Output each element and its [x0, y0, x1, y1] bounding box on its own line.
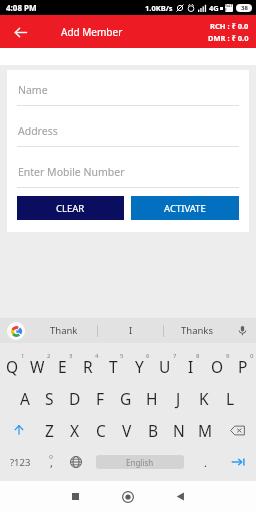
button[interactable]: I	[178, 350, 204, 382]
staticText: Add Member	[61, 25, 123, 39]
staticText: M	[198, 420, 213, 441]
staticText: N	[173, 420, 185, 441]
button[interactable]: F	[87, 382, 113, 414]
staticText: DMR : ₹ 0.0	[208, 33, 249, 43]
button[interactable]: V	[114, 414, 140, 446]
button[interactable]: N	[166, 414, 192, 446]
button[interactable]: Y	[126, 350, 152, 382]
staticText: 5	[120, 352, 124, 360]
staticText: H	[146, 388, 158, 409]
staticText: Enter Mobile Number	[18, 165, 125, 179]
button[interactable]: Address	[17, 124, 239, 147]
staticText: 38	[241, 4, 248, 12]
staticText: English	[126, 457, 154, 468]
button[interactable]: U	[152, 350, 178, 382]
staticText: Y	[135, 356, 144, 377]
staticText: 1	[21, 352, 25, 360]
button[interactable]: Shift	[0, 414, 37, 446]
staticText: K	[199, 388, 209, 409]
staticText: A	[20, 388, 30, 409]
staticText: VoLTE	[225, 4, 233, 12]
staticText: 8	[196, 352, 200, 360]
button[interactable]: E	[50, 350, 75, 382]
staticText: .	[204, 455, 207, 470]
button[interactable]: Back	[9, 21, 31, 43]
staticText: Address	[18, 124, 58, 138]
staticText: 2	[47, 352, 51, 360]
button[interactable]: C	[88, 414, 114, 446]
staticText: F	[96, 388, 105, 409]
staticText: ,	[50, 455, 53, 469]
staticText: E	[58, 356, 67, 377]
button[interactable]: Thank	[31, 318, 97, 343]
staticText: O	[211, 356, 224, 377]
staticText: I	[129, 324, 133, 337]
staticText: S	[45, 388, 54, 409]
staticText: Name	[18, 83, 48, 97]
button[interactable]: A	[12, 382, 37, 414]
button[interactable]: English	[96, 455, 184, 469]
button[interactable]: I	[98, 318, 163, 343]
button[interactable]: B	[140, 414, 166, 446]
staticText: J	[176, 388, 181, 409]
staticText: 4:08 PM	[6, 2, 37, 13]
button[interactable]: X	[62, 414, 88, 446]
button[interactable]: CLEAR	[17, 196, 124, 220]
staticText: D	[69, 388, 81, 409]
staticText: G	[120, 388, 132, 409]
button[interactable]: W	[25, 350, 50, 382]
button[interactable]: O	[204, 350, 230, 382]
staticText: U	[159, 356, 171, 377]
button[interactable]: M	[192, 414, 218, 446]
button[interactable]: T	[100, 350, 126, 382]
button[interactable]: Thanks	[164, 318, 229, 343]
button[interactable]: .	[190, 446, 220, 478]
staticText: B	[148, 420, 159, 441]
button[interactable]: D	[62, 382, 87, 414]
button[interactable]: Q	[0, 350, 25, 382]
button[interactable]: S	[37, 382, 62, 414]
staticText: 1.0KB/s	[145, 3, 173, 13]
button[interactable]: Enter Mobile Number	[17, 165, 239, 188]
button[interactable]: Back	[160, 481, 200, 512]
button[interactable]: K	[191, 382, 217, 414]
staticText: 3	[69, 352, 73, 360]
button[interactable]: ACTIVATE	[131, 196, 239, 220]
staticText: 9	[226, 352, 230, 360]
staticText: CLEAR	[56, 202, 85, 215]
staticText: X	[70, 420, 80, 441]
staticText: Z	[45, 420, 54, 441]
staticText: L	[226, 388, 235, 409]
staticText: 6	[146, 352, 150, 360]
button[interactable]: Next field	[220, 446, 256, 478]
button[interactable]: L	[217, 382, 243, 414]
staticText: 0	[250, 352, 254, 360]
staticText: 4G	[209, 3, 219, 13]
staticText: Thank	[50, 324, 78, 337]
staticText: I	[188, 356, 194, 377]
staticText: RCH : ₹ 0.0	[210, 21, 249, 31]
staticText: 4	[95, 352, 99, 360]
button[interactable]: ?123	[0, 446, 40, 478]
staticText: C	[96, 420, 106, 441]
button[interactable]: Home	[108, 481, 148, 512]
staticText: P	[238, 356, 248, 377]
button[interactable]: G	[113, 382, 139, 414]
staticText: Thanks	[181, 324, 213, 337]
button[interactable]: Backspace	[218, 414, 256, 446]
staticText: Q	[6, 356, 19, 377]
button[interactable]: P	[230, 350, 256, 382]
button[interactable]: Recents	[55, 481, 95, 512]
button[interactable]: ,	[40, 446, 62, 478]
staticText: V	[122, 420, 132, 441]
staticText: 7	[173, 352, 177, 360]
staticText: ACTIVATE	[164, 202, 206, 215]
button[interactable]: R	[75, 350, 100, 382]
staticText: T	[109, 356, 118, 377]
button[interactable]: Z	[37, 414, 62, 446]
button[interactable]: Change language	[62, 446, 90, 478]
button[interactable]: H	[139, 382, 165, 414]
button[interactable]: J	[165, 382, 191, 414]
button[interactable]: Voice input	[229, 318, 256, 343]
button[interactable]: Name	[17, 83, 239, 106]
